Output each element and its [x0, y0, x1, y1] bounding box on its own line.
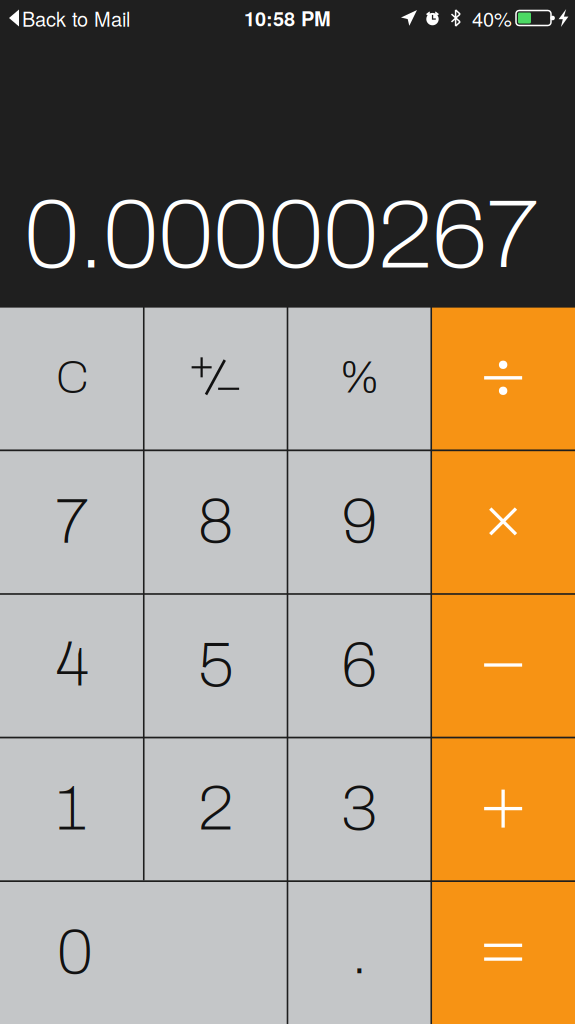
staticText: 7 — [55, 487, 88, 555]
staticText: 3 — [341, 774, 377, 843]
button[interactable]: Plus minus — [144, 306, 288, 450]
button[interactable]: Back to Mail — [0, 0, 130, 36]
button[interactable]: Subtract — [431, 593, 575, 737]
staticText: % — [339, 354, 380, 402]
button[interactable]: Decimal point — [287, 880, 431, 1024]
staticText: 9 — [341, 487, 377, 555]
staticText: 40% — [472, 4, 512, 32]
button[interactable]: 7 — [0, 450, 144, 593]
button[interactable]: Multiply — [431, 450, 575, 593]
staticText: 0.00000267 — [24, 182, 538, 288]
button[interactable]: Add — [431, 737, 575, 880]
staticText: Back to Mail — [22, 4, 130, 32]
staticText: 0 — [57, 918, 93, 986]
button[interactable]: 9 — [287, 450, 431, 593]
button[interactable]: 6 — [287, 593, 431, 737]
button[interactable]: 4 — [0, 593, 144, 737]
staticText: 4 — [55, 631, 88, 699]
button[interactable]: 1 — [0, 737, 144, 880]
button[interactable]: 2 — [144, 737, 288, 880]
staticText: 2 — [198, 774, 233, 843]
button[interactable]: 8 — [144, 450, 288, 593]
staticText: 1 — [57, 774, 86, 843]
staticText: 6 — [341, 631, 377, 699]
button[interactable]: Clear — [0, 306, 144, 450]
button[interactable]: 3 — [287, 737, 431, 880]
staticText: 5 — [198, 631, 234, 699]
staticText: C — [56, 354, 88, 402]
button[interactable]: 5 — [144, 593, 288, 737]
staticText: 8 — [198, 487, 234, 555]
button[interactable]: Percent — [287, 306, 431, 450]
button[interactable]: 0 — [0, 880, 287, 1024]
staticText: . — [351, 918, 367, 986]
staticText: 10:58 PM — [244, 4, 331, 32]
button[interactable]: Equals — [431, 880, 575, 1024]
button[interactable]: Divide — [431, 306, 575, 450]
